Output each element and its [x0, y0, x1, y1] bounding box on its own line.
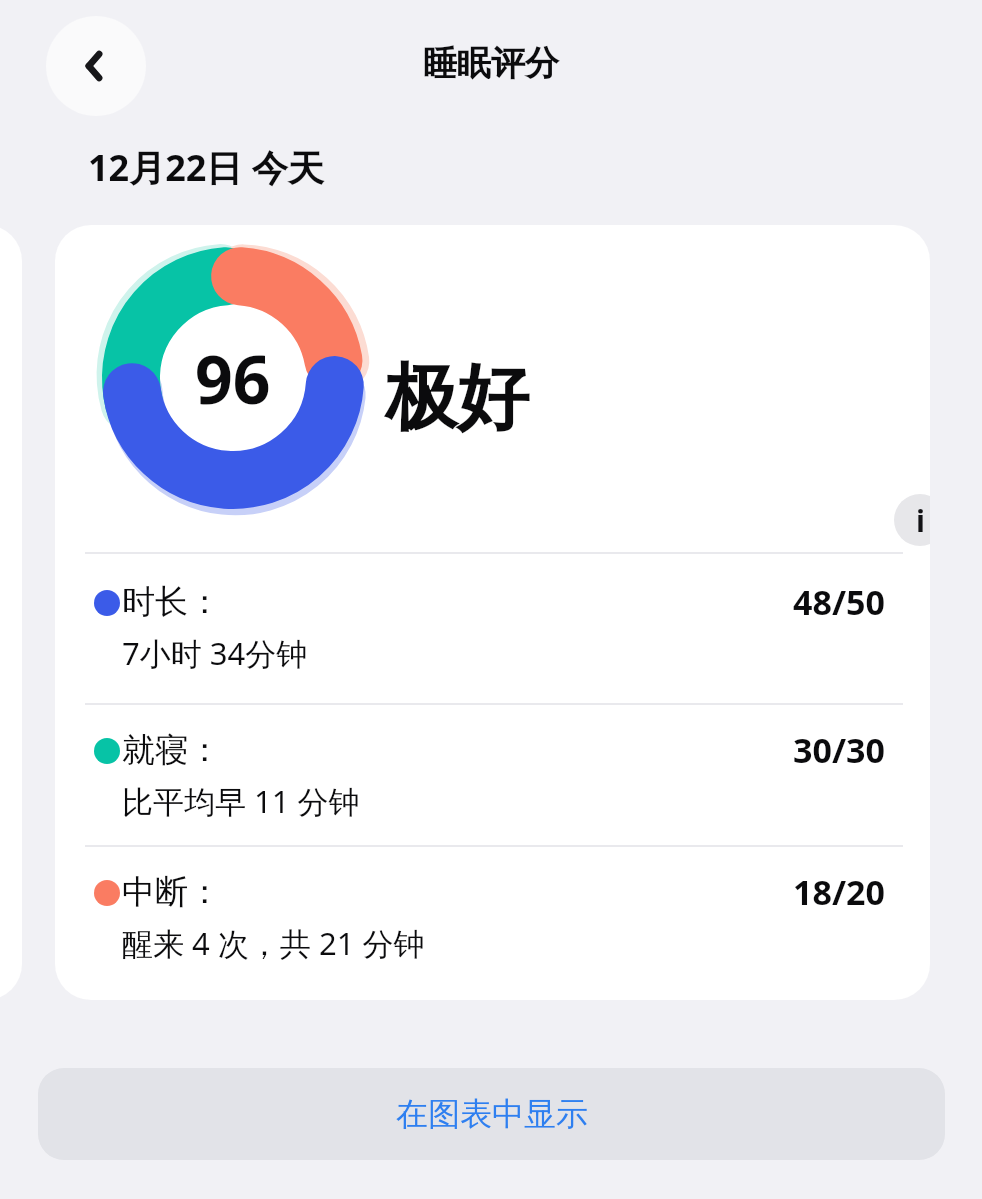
- button[interactable]: 在图表中显示: [38, 1068, 945, 1160]
- staticText: 在图表中显示: [396, 1094, 588, 1134]
- button[interactable]: 就寝：: [85, 705, 903, 847]
- staticText: 比平均早 11 分钟: [122, 780, 360, 822]
- staticText: 中断：: [122, 871, 221, 913]
- staticText: 18/20: [793, 869, 885, 915]
- button[interactable]: Info: [894, 494, 930, 546]
- button[interactable]: Back: [46, 16, 146, 116]
- staticText: 12月22日 今天: [88, 143, 324, 192]
- staticText: i: [916, 500, 925, 541]
- staticText: 时长：: [122, 581, 221, 623]
- staticText: 30/30: [793, 727, 885, 773]
- button[interactable]: 中断：: [85, 847, 903, 989]
- staticText: 7小时 34分钟: [122, 632, 308, 674]
- staticText: 极好: [385, 353, 529, 444]
- staticText: 48/50: [793, 579, 885, 625]
- staticText: 醒来 4 次，共 21 分钟: [122, 922, 425, 964]
- staticText: 睡眠评分: [423, 42, 559, 85]
- button[interactable]: 时长：: [85, 557, 903, 699]
- staticText: 就寝：: [122, 729, 221, 771]
- staticText: 96: [195, 333, 271, 423]
